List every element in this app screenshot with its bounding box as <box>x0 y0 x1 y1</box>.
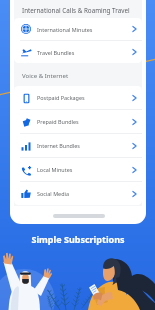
button[interactable]: Prepaid Bundles <box>14 110 142 133</box>
staticText: Social Media <box>37 190 69 197</box>
staticText: International Minutes <box>37 26 93 33</box>
staticText: Travel Bundles <box>37 49 75 56</box>
staticText: Simple Subscriptions <box>31 233 125 245</box>
staticText: Prepaid Bundles <box>37 118 79 125</box>
button[interactable]: Social Media <box>14 182 142 205</box>
staticText: Local Minutes <box>37 166 73 173</box>
button[interactable]: Postpaid Packages <box>14 86 142 109</box>
staticText: International Calls & Roaming Travel <box>22 6 130 15</box>
staticText: Internet Bundles <box>37 142 80 149</box>
button[interactable]: Travel Bundles <box>14 41 142 63</box>
staticText: Postpaid Packages <box>37 94 85 101</box>
button[interactable]: Local Minutes <box>14 158 142 181</box>
button[interactable]: Internet Bundles <box>14 134 142 157</box>
button[interactable]: International Minutes <box>14 18 142 40</box>
staticText: Voice & Internet <box>22 71 69 79</box>
